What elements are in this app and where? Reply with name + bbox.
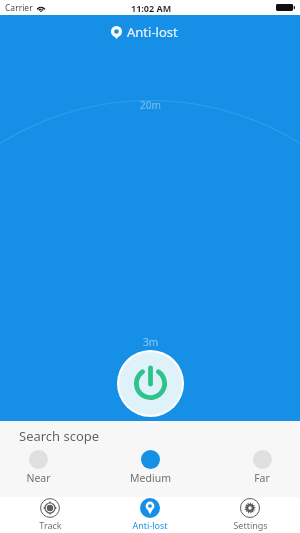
- button[interactable]: Power: [119, 352, 182, 415]
- button[interactable]: Anti-lost: [111, 23, 178, 41]
- staticText: Carrier: [5, 2, 33, 14]
- button[interactable]: Far: [232, 450, 292, 485]
- staticText: 11:02 AM: [131, 2, 172, 14]
- staticText: 20m: [140, 98, 161, 112]
- button[interactable]: Medium: [120, 450, 180, 485]
- button[interactable]: Track: [0, 497, 100, 533]
- staticText: Anti-lost: [127, 23, 178, 41]
- staticText: Anti-lost: [132, 519, 168, 531]
- staticText: Settings: [233, 519, 268, 531]
- button[interactable]: Anti-lost: [100, 497, 200, 533]
- staticText: Search scope: [19, 427, 100, 445]
- staticText: Far: [254, 471, 270, 485]
- button[interactable]: Settings: [200, 497, 300, 533]
- staticText: 3m: [143, 335, 159, 349]
- staticText: Near: [26, 471, 51, 485]
- button[interactable]: Near: [8, 450, 68, 485]
- staticText: Track: [39, 519, 62, 531]
- staticText: Medium: [130, 471, 171, 485]
